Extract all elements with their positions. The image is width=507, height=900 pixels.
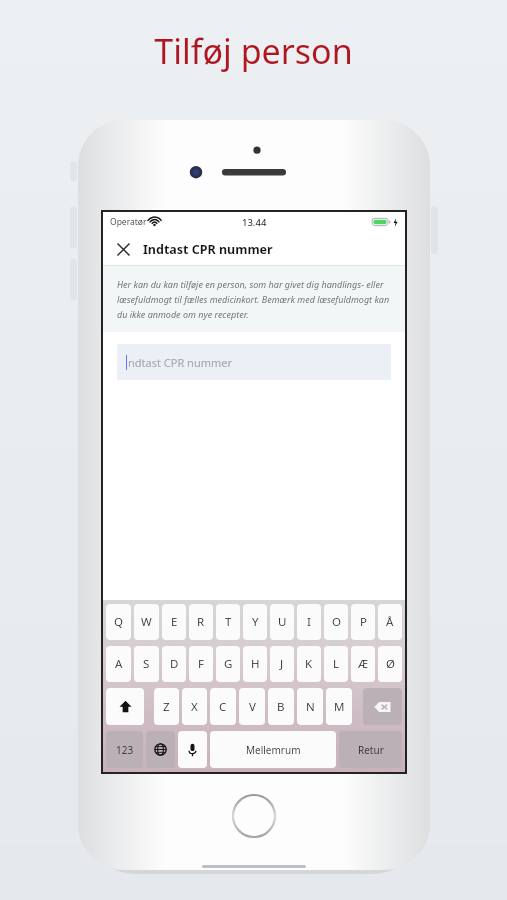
staticText: 13.44 [242, 216, 267, 229]
staticText: T [225, 614, 232, 630]
button[interactable]: Skift sprog [146, 731, 175, 768]
staticText: Ø [386, 656, 395, 672]
staticText: Q [114, 614, 123, 630]
staticText: Æ [358, 656, 369, 672]
staticText: V [249, 699, 256, 715]
staticText: O [332, 614, 341, 630]
staticText: S [143, 656, 150, 672]
staticText: U [278, 614, 287, 630]
button[interactable]: Retur [339, 731, 402, 768]
button[interactable]: V [239, 688, 265, 725]
button[interactable]: Home [231, 793, 277, 839]
button[interactable]: H [243, 646, 267, 682]
button[interactable]: I [297, 604, 321, 640]
staticText: Å [386, 614, 394, 630]
button[interactable]: Y [243, 604, 267, 640]
button[interactable]: Shift [106, 688, 144, 725]
staticText: X [191, 699, 198, 715]
staticText: J [280, 656, 284, 672]
staticText: Indtast CPR nummer [143, 241, 273, 258]
button[interactable]: Q [106, 604, 131, 640]
staticText: G [224, 656, 233, 672]
button[interactable]: S [134, 646, 159, 682]
button[interactable]: C [210, 688, 236, 725]
button[interactable]: Diktering [178, 731, 207, 768]
button[interactable]: O [324, 604, 348, 640]
staticText: A [115, 656, 123, 672]
staticText: M [334, 699, 345, 715]
staticText: ndtast CPR nummer [128, 355, 233, 370]
staticText: N [306, 699, 315, 715]
button[interactable]: E [162, 604, 186, 640]
staticText: R [197, 614, 205, 630]
button[interactable]: R [189, 604, 213, 640]
staticText: Mellemrum [246, 743, 301, 757]
staticText: Her kan du kan tilføje en person, som ha… [117, 278, 391, 320]
staticText: W [141, 614, 152, 630]
staticText: I [307, 614, 311, 630]
staticText: B [277, 699, 285, 715]
staticText: K [305, 656, 313, 672]
button[interactable]: Ø [378, 646, 402, 682]
button[interactable]: U [270, 604, 294, 640]
staticText: Y [252, 614, 259, 630]
button[interactable]: Luk [109, 235, 137, 263]
button[interactable]: G [216, 646, 240, 682]
button[interactable]: M [326, 688, 352, 725]
staticText: 123 [116, 743, 134, 757]
button[interactable]: 123 [106, 731, 143, 768]
staticText: C [219, 699, 227, 715]
button[interactable]: N [297, 688, 323, 725]
button[interactable]: L [324, 646, 348, 682]
staticText: L [333, 656, 340, 672]
button[interactable]: T [216, 604, 240, 640]
staticText: H [251, 656, 260, 672]
button[interactable]: P [351, 604, 375, 640]
staticText: Operatør [110, 216, 147, 228]
button[interactable]: K [297, 646, 321, 682]
staticText: P [360, 614, 367, 630]
button[interactable]: A [106, 646, 131, 682]
staticText: D [170, 656, 179, 672]
staticText: E [171, 614, 178, 630]
button[interactable]: Å [378, 604, 402, 640]
button[interactable]: J [270, 646, 294, 682]
staticText: Retur [358, 743, 384, 757]
button[interactable]: Æ [351, 646, 375, 682]
button[interactable]: W [134, 604, 159, 640]
button[interactable]: X [182, 688, 207, 725]
staticText: F [198, 656, 204, 672]
button[interactable]: Slet [363, 688, 402, 725]
button[interactable]: ndtast CPR nummer [117, 344, 391, 380]
button[interactable]: D [162, 646, 186, 682]
staticText: Tilføj person [154, 28, 353, 74]
button[interactable]: Z [154, 688, 179, 725]
staticText: Z [163, 699, 170, 715]
button[interactable]: B [268, 688, 294, 725]
button[interactable]: F [189, 646, 213, 682]
button[interactable]: Mellemrum [210, 731, 336, 768]
